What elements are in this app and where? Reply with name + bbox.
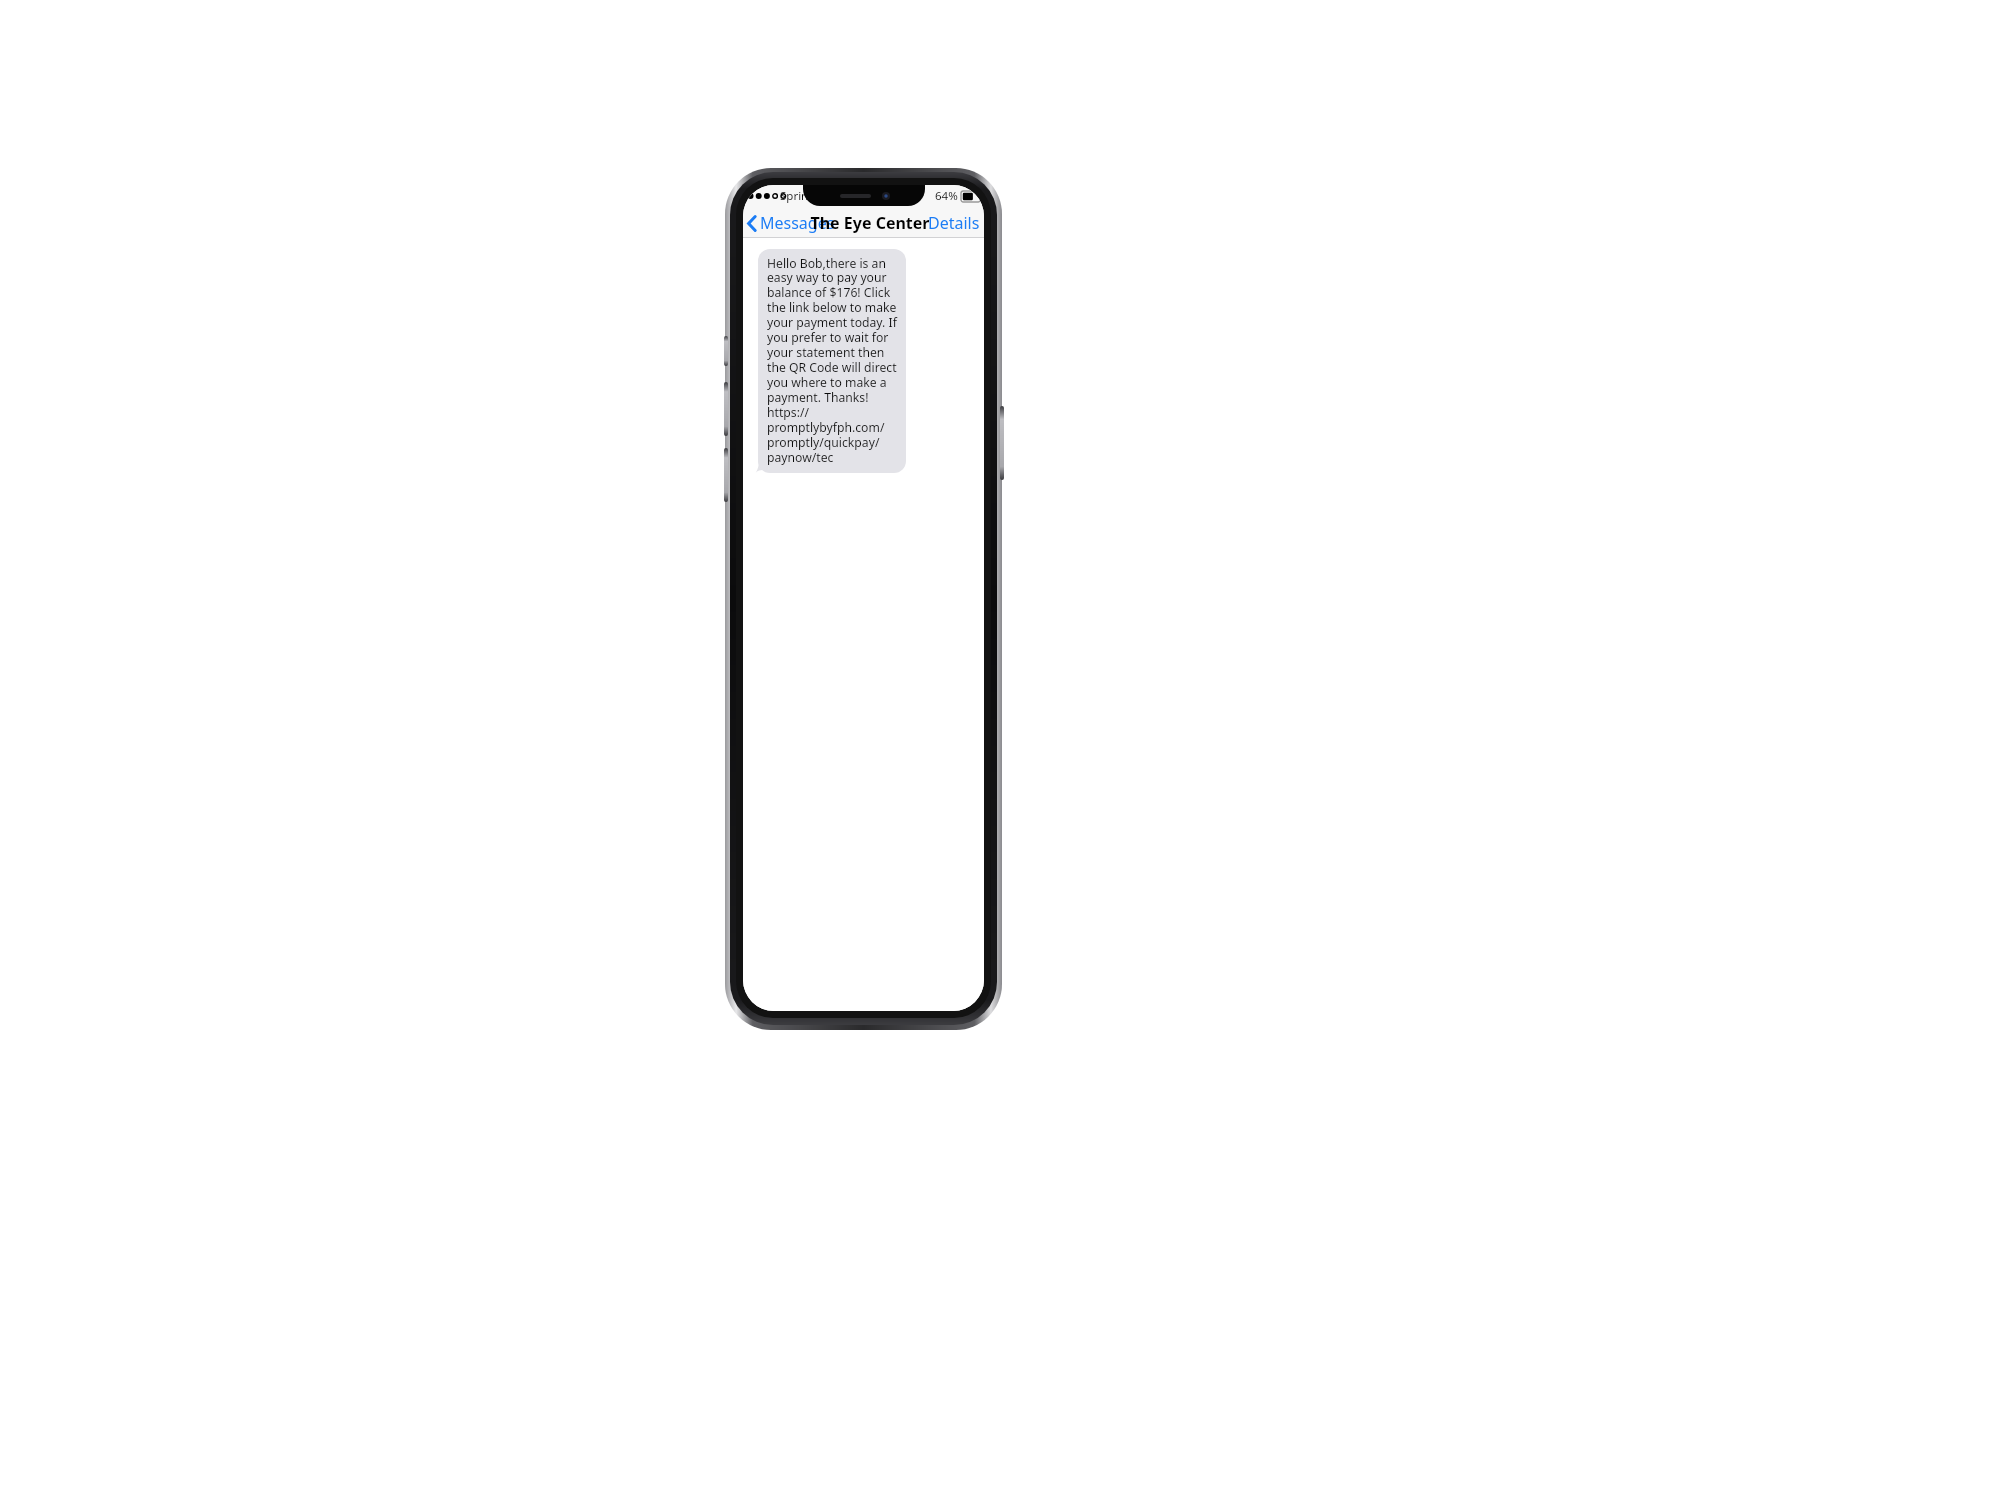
staticText: Sprint [780, 188, 813, 204]
staticText: Details [928, 212, 980, 234]
other: Back [747, 215, 757, 232]
staticText: Hello Bob,there is an easy way to pay yo… [767, 255, 899, 466]
button[interactable]: Details [924, 208, 984, 238]
staticText: Messages [760, 212, 835, 234]
button[interactable]: Back [743, 209, 839, 237]
staticText: The Eye Center [810, 212, 930, 234]
staticText: 64% [935, 188, 958, 204]
button[interactable]: Hello Bob,there is an easy way to pay yo… [758, 249, 906, 473]
